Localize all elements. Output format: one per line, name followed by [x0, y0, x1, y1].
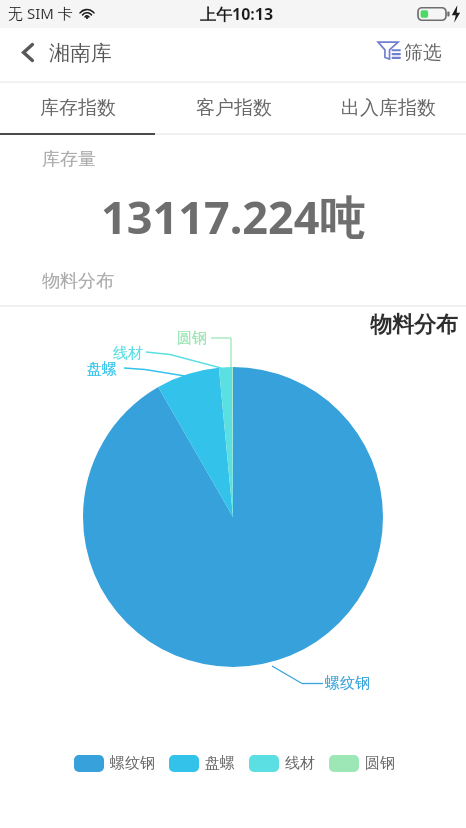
staticText: 上午10:13: [200, 3, 274, 25]
button[interactable]: Back: [0, 25, 49, 80]
staticText: 圆钢: [177, 329, 207, 348]
button[interactable]: 圆钢: [329, 754, 395, 773]
staticText: 螺纹钢: [110, 754, 155, 773]
button[interactable]: 线材: [249, 754, 315, 773]
staticText: 螺纹钢: [325, 674, 370, 693]
staticText: 圆钢: [365, 754, 395, 773]
staticText: 筛选: [404, 41, 442, 65]
button[interactable]: 客户指数: [156, 83, 311, 133]
staticText: 线材: [285, 754, 315, 773]
staticText: 湘南库: [49, 40, 112, 66]
staticText: 线材: [113, 344, 143, 363]
button[interactable]: 库存指数: [0, 83, 156, 133]
staticText: 物料分布: [370, 311, 458, 339]
staticText: 物料分布: [42, 270, 114, 293]
staticText: 盘螺: [205, 754, 235, 773]
staticText: 出入库指数: [341, 96, 436, 120]
staticText: 客户指数: [196, 96, 272, 120]
button[interactable]: 筛选: [365, 25, 466, 80]
staticText: 盘螺: [87, 360, 117, 379]
button[interactable]: 螺纹钢: [74, 754, 155, 773]
button[interactable]: 盘螺: [169, 754, 235, 773]
staticText: 13117.224吨: [101, 186, 365, 247]
staticText: 库存指数: [40, 96, 116, 120]
staticText: 无 SIM 卡: [8, 3, 73, 23]
staticText: 库存量: [42, 148, 96, 171]
button[interactable]: 出入库指数: [311, 83, 466, 133]
